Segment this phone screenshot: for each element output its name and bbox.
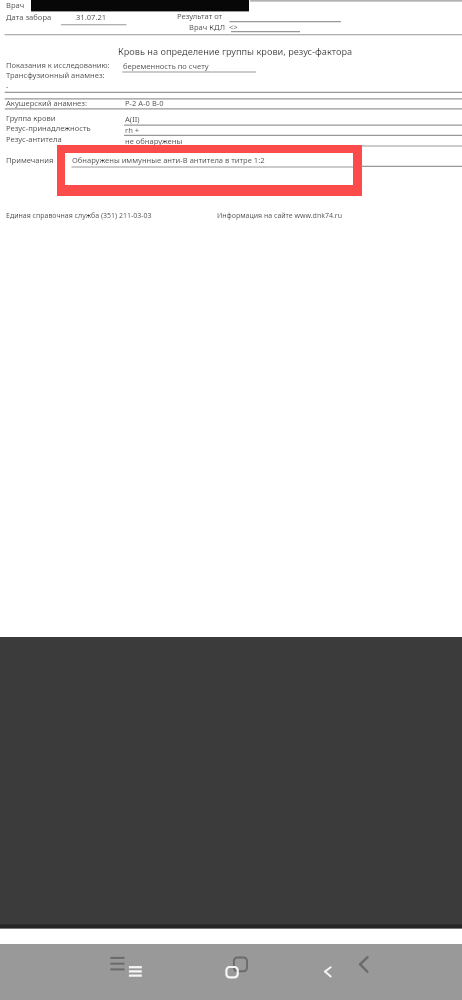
staticText: - bbox=[6, 81, 9, 91]
staticText: Трансфузионный анамнез: bbox=[6, 70, 105, 80]
staticText: rh + bbox=[125, 125, 140, 135]
staticText: Р-2 А-0 В-0 bbox=[125, 98, 164, 108]
staticText: Дата забора bbox=[6, 12, 52, 22]
button[interactable]: Home bbox=[214, 944, 260, 1000]
staticText: Резус-антитела bbox=[6, 134, 62, 144]
button[interactable]: Back bbox=[318, 944, 376, 1000]
staticText: Группа крови bbox=[6, 113, 56, 123]
staticText: Кровь на определение группы крови, резус… bbox=[118, 45, 353, 58]
staticText: Примечания bbox=[6, 155, 54, 165]
staticText: не обнаружены bbox=[125, 136, 183, 146]
staticText: Врач КДЛ <> bbox=[189, 22, 238, 32]
staticText: Акушерский анамнез: bbox=[6, 98, 88, 108]
staticText: Единая справочная служба (351) 211-03-03 bbox=[6, 211, 152, 221]
staticText: Информация на сайте www.dnk74.ru bbox=[217, 211, 343, 221]
button[interactable]: Recent apps bbox=[100, 944, 156, 1000]
staticText: Показания к исследованию: bbox=[6, 60, 110, 70]
staticText: беременность по счету bbox=[123, 61, 209, 71]
staticText: A(II) bbox=[125, 114, 140, 124]
staticText: Резус-принадлежность bbox=[6, 123, 91, 133]
staticText: Результат от bbox=[177, 11, 223, 21]
staticText: 31.07.21 bbox=[76, 12, 107, 22]
staticText: Обнаружены иммунные анти-B антитела в ти… bbox=[72, 155, 265, 165]
staticText: Врач bbox=[6, 0, 25, 10]
